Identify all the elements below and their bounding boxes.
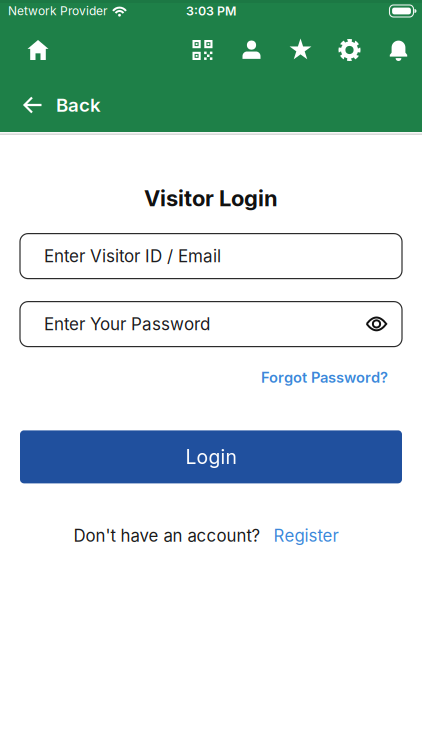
button[interactable]: Back — [0, 94, 101, 116]
staticText: Login — [185, 445, 236, 469]
button[interactable]: Settings — [338, 38, 361, 61]
staticText: 3:03 PM — [186, 3, 236, 18]
button[interactable]: Profile — [240, 38, 263, 61]
button[interactable]: Login — [20, 430, 402, 483]
staticText: Register — [273, 525, 338, 546]
button[interactable]: Register — [273, 525, 338, 546]
button[interactable]: Home — [26, 38, 50, 62]
button[interactable]: Show Password — [366, 317, 387, 331]
button[interactable]: Favorites — [289, 38, 312, 61]
staticText: Visitor Login — [144, 185, 278, 212]
staticText: Forgot Password? — [261, 369, 388, 386]
button[interactable]: Scan QR Code — [191, 38, 214, 61]
staticText: Enter Your Password — [44, 314, 210, 334]
staticText: Enter Visitor ID / Email — [44, 246, 221, 266]
button[interactable]: Notifications — [387, 38, 410, 61]
staticText: Network Provider — [8, 4, 108, 18]
button[interactable]: Forgot Password? — [261, 369, 388, 386]
staticText: Don't have an account? — [73, 525, 260, 546]
staticText: Back — [56, 94, 101, 116]
